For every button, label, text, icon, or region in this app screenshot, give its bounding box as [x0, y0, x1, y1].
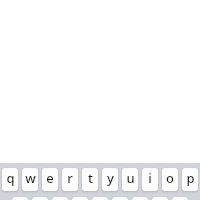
- button[interactable]: y: [102, 168, 118, 191]
- button[interactable]: j: [132, 197, 148, 200]
- other: Text entry: [0, 0, 200, 200]
- staticText: y: [107, 169, 114, 187]
- button[interactable]: s: [32, 197, 48, 200]
- button[interactable]: h: [112, 197, 128, 200]
- button[interactable]: q: [2, 168, 18, 191]
- button[interactable]: t: [82, 168, 98, 191]
- button[interactable]: e: [42, 168, 58, 191]
- button[interactable]: i: [142, 168, 158, 191]
- staticText: p: [186, 169, 195, 187]
- button[interactable]: d: [52, 197, 68, 200]
- staticText: i: [148, 169, 152, 187]
- button[interactable]: u: [122, 168, 138, 191]
- button[interactable]: a: [12, 197, 28, 200]
- button[interactable]: l: [172, 197, 188, 200]
- staticText: u: [126, 169, 135, 187]
- button[interactable]: p: [182, 168, 198, 191]
- staticText: e: [46, 169, 54, 187]
- staticText: q: [6, 169, 15, 187]
- button[interactable]: r: [62, 168, 78, 191]
- staticText: r: [67, 169, 73, 187]
- button[interactable]: k: [152, 197, 168, 200]
- staticText: o: [166, 169, 174, 187]
- button[interactable]: g: [92, 197, 108, 200]
- staticText: w: [25, 169, 36, 187]
- button[interactable]: w: [22, 168, 38, 191]
- button[interactable]: o: [162, 168, 178, 191]
- button[interactable]: f: [72, 197, 88, 200]
- staticText: t: [88, 169, 93, 187]
